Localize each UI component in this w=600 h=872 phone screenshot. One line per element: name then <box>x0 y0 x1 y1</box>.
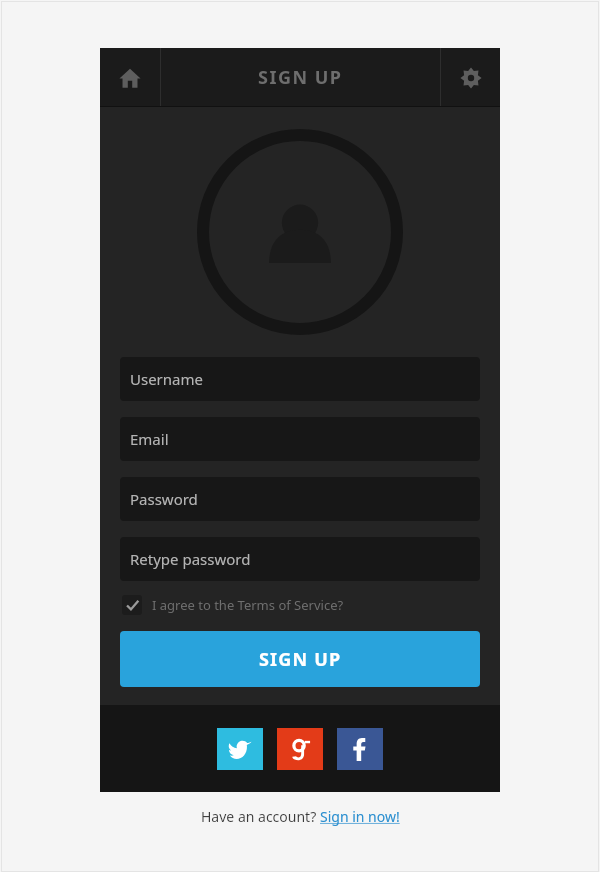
button[interactable]: Google Plus <box>277 728 323 770</box>
button[interactable]: Email <box>120 417 480 461</box>
staticText: SIGN UP <box>259 647 342 672</box>
staticText: Retype password <box>130 549 251 569</box>
button[interactable]: Sign in now! <box>320 807 400 826</box>
button[interactable]: Home <box>100 48 160 107</box>
button[interactable]: Retype password <box>120 537 480 581</box>
button[interactable]: Password <box>120 477 480 521</box>
button[interactable]: Settings <box>441 48 500 107</box>
button[interactable]: Twitter <box>217 728 263 770</box>
staticText: SIGN UP <box>258 65 343 90</box>
staticText: Username <box>130 369 203 389</box>
staticText: Sign in now! <box>320 807 400 826</box>
button[interactable]: I agree to the Terms of Service? <box>122 595 344 615</box>
button[interactable]: Username <box>120 357 480 401</box>
staticText: Email <box>130 429 169 449</box>
staticText: Password <box>130 489 198 509</box>
staticText: I agree to the Terms of Service? <box>152 596 344 614</box>
button[interactable]: SIGN UP <box>120 631 480 687</box>
staticText: Have an account? <box>201 807 320 826</box>
button[interactable]: Facebook <box>337 728 383 770</box>
